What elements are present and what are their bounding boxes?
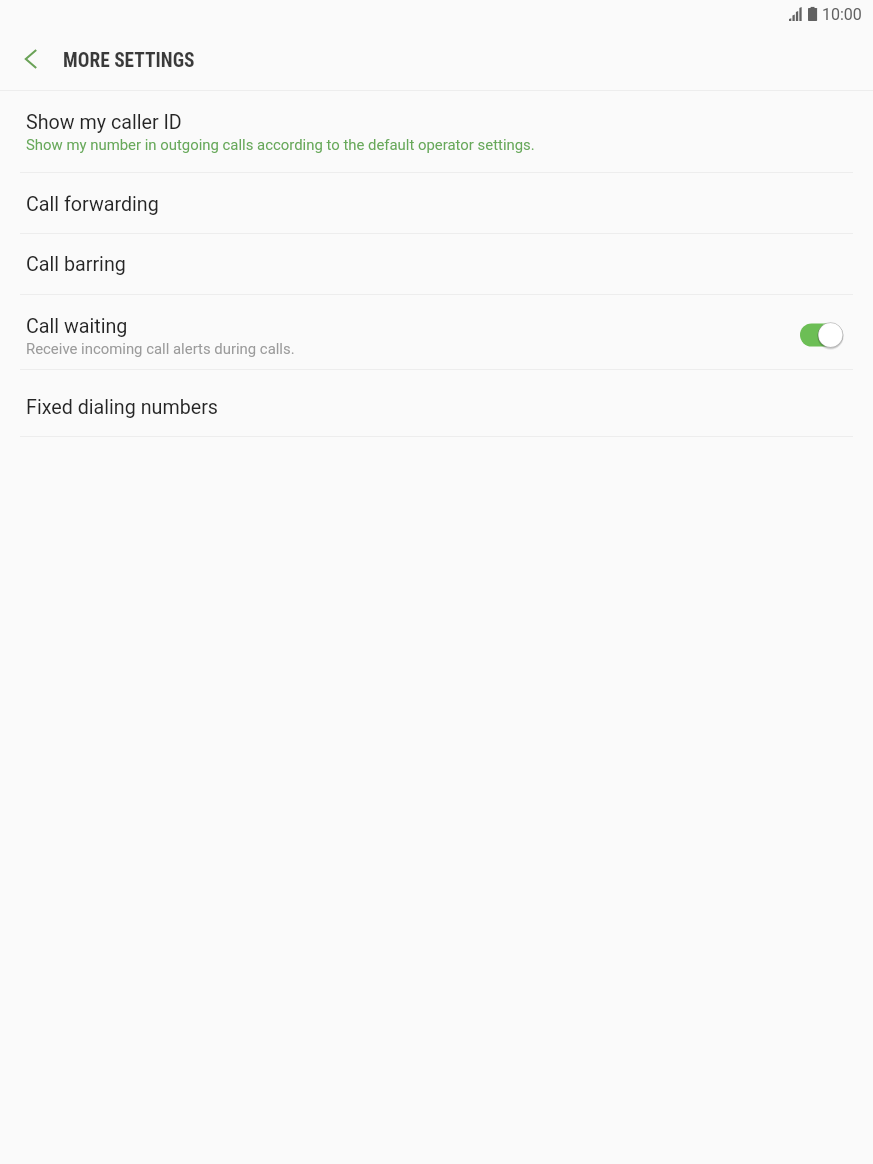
staticText: Show my number in outgoing calls accordi… [26,136,535,153]
staticText: MORE SETTINGS [63,49,195,72]
button[interactable]: Show my caller ID [0,90,873,172]
button[interactable]: Call forwarding [0,172,873,233]
staticText: Call waiting [26,315,128,338]
staticText: Fixed dialing numbers [26,396,218,419]
button[interactable]: Fixed dialing numbers [0,369,873,436]
button[interactable]: Call waiting [0,294,873,369]
staticText: Receive incoming call alerts during call… [26,340,295,357]
button[interactable]: Back [6,34,56,84]
staticText: Call barring [26,253,126,276]
staticText: Call forwarding [26,193,159,216]
button[interactable]: Call waiting toggle [800,317,852,353]
staticText: Show my caller ID [26,111,182,134]
button[interactable]: Call barring [0,233,873,294]
staticText: 10:00 [822,5,862,24]
